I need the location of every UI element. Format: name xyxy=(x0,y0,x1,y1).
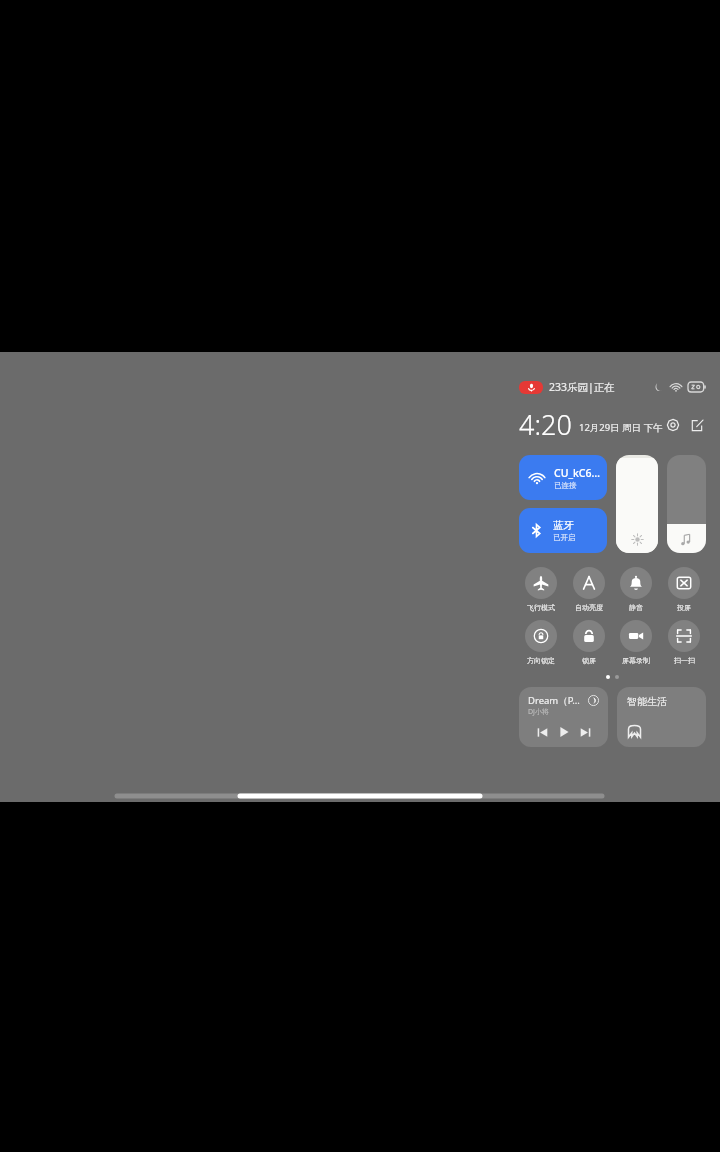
staticText: DJ小将 xyxy=(528,707,550,717)
button[interactable]: 蓝牙 xyxy=(519,508,607,553)
button[interactable] xyxy=(667,455,706,553)
button[interactable]: Lock screen xyxy=(567,620,611,665)
other: Cast screen xyxy=(668,567,700,599)
staticText: 智能生活 xyxy=(627,695,667,708)
staticText: CU_kC65_ xyxy=(554,466,601,480)
button[interactable]: Settings xyxy=(663,415,683,435)
staticText: 12月29日 周日 下午 xyxy=(579,421,663,434)
other: Mute xyxy=(620,567,652,599)
button[interactable]: Dream（P... xyxy=(519,687,608,747)
button[interactable]: Screen record xyxy=(614,620,658,665)
button[interactable]: Airplane mode xyxy=(519,567,563,612)
staticText: 扫一扫 xyxy=(674,656,695,665)
button[interactable]: Rotation lock xyxy=(519,620,563,665)
staticText: 已连接 xyxy=(554,481,577,490)
button[interactable]: Play xyxy=(556,724,572,740)
button[interactable]: Previous xyxy=(534,724,550,740)
staticText: 自动亮度 xyxy=(575,603,603,612)
other: Rotation lock xyxy=(525,620,557,652)
button[interactable]: Mute xyxy=(614,567,658,612)
staticText: 静音 xyxy=(629,603,643,612)
button[interactable]: Scan xyxy=(662,620,706,665)
button[interactable] xyxy=(616,455,658,553)
staticText: 已开启 xyxy=(553,533,576,542)
staticText: 方向锁定 xyxy=(527,656,555,665)
button[interactable]: 智能生活 xyxy=(617,687,706,747)
other: Screen record xyxy=(620,620,652,652)
staticText: 屏幕录制 xyxy=(622,656,650,665)
staticText: 233乐园|正在 xyxy=(549,380,615,394)
staticText: Dream（P... xyxy=(528,694,580,707)
staticText: 飞行模式 xyxy=(527,603,555,612)
other: Scan xyxy=(668,620,700,652)
button[interactable]: Edit xyxy=(689,415,706,435)
button[interactable]: Next xyxy=(577,724,593,740)
button[interactable]: Cast screen xyxy=(662,567,706,612)
other: Auto brightness xyxy=(573,567,605,599)
button[interactable]: Auto brightness xyxy=(567,567,611,612)
button[interactable]: CU_kC65_ xyxy=(519,455,607,500)
staticText: 锁屏 xyxy=(582,656,596,665)
staticText: 蓝牙 xyxy=(553,519,574,532)
other: Lock screen xyxy=(573,620,605,652)
other: Airplane mode xyxy=(525,567,557,599)
staticText: 4:20 xyxy=(519,406,572,443)
staticText: 投屏 xyxy=(677,603,691,612)
